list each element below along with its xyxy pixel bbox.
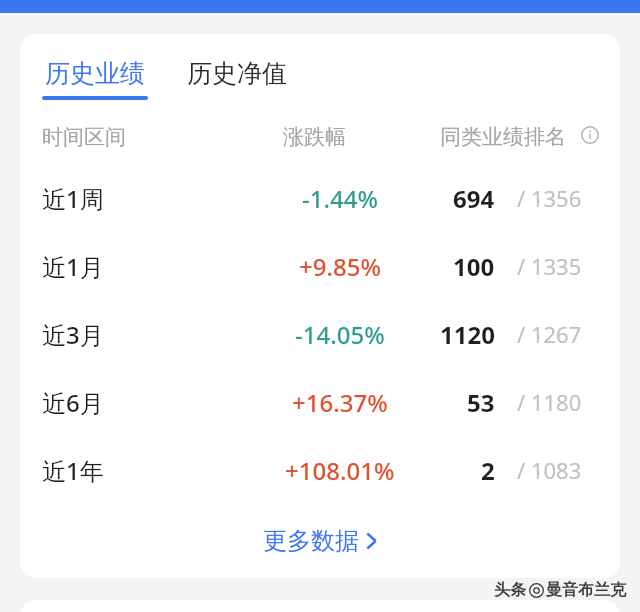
staticText: / 1083 — [517, 455, 582, 485]
staticText: 曼音布兰克 — [546, 580, 626, 600]
button[interactable]: 历史净值 — [187, 58, 287, 89]
staticText: 100 — [453, 250, 495, 283]
button[interactable]: 历史业绩 — [42, 58, 148, 100]
staticText: 时间区间 — [42, 124, 126, 150]
staticText: / 1356 — [517, 183, 582, 213]
button[interactable]: 近3月 — [20, 300, 620, 368]
button[interactable]: 近6月 — [20, 368, 620, 436]
staticText: 53 — [467, 386, 495, 419]
button[interactable]: 更多数据 — [251, 518, 390, 564]
staticText: 历史业绩 — [45, 58, 145, 89]
staticText: 近6月 — [42, 386, 104, 419]
button[interactable]: 近1周 — [20, 164, 620, 232]
staticText: +16.37% — [292, 386, 388, 419]
staticText: / 1180 — [517, 387, 582, 417]
staticText: 更多数据 — [263, 526, 359, 556]
button[interactable]: 近1月 — [20, 232, 620, 300]
staticText: 同类业绩排名 — [440, 124, 566, 150]
staticText: 近3月 — [42, 318, 104, 351]
staticText: / 1335 — [517, 251, 582, 281]
staticText: 近1年 — [42, 454, 104, 487]
staticText: +108.01% — [285, 454, 395, 487]
button[interactable]: 排名说明 — [581, 126, 599, 144]
staticText: 头条 — [494, 580, 526, 600]
staticText: 2 — [481, 454, 495, 487]
staticText: +9.85% — [299, 250, 381, 283]
staticText: 近1周 — [42, 182, 104, 215]
button[interactable]: 近1年 — [20, 436, 620, 504]
staticText: 近1月 — [42, 250, 104, 283]
staticText: -1.44% — [302, 182, 378, 215]
staticText: -14.05% — [295, 318, 385, 351]
staticText: 涨跌幅 — [283, 124, 346, 150]
staticText: 694 — [453, 182, 495, 215]
staticText: 1120 — [440, 318, 495, 351]
staticText: / 1267 — [517, 319, 582, 349]
staticText: 历史净值 — [187, 58, 287, 89]
